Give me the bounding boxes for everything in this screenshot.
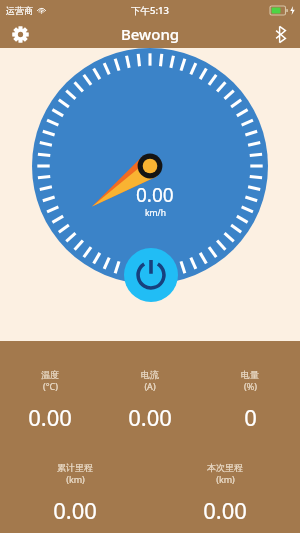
button[interactable]: Power — [124, 248, 178, 302]
staticText: 累计里程 — [57, 462, 93, 473]
staticText: 电量 — [241, 369, 259, 380]
staticText: 0.00 — [53, 495, 97, 525]
staticText: 运营商 — [6, 5, 33, 16]
staticText: Bewong — [121, 24, 180, 44]
button[interactable]: Bluetooth — [260, 20, 300, 48]
staticText: 下午5:13 — [131, 4, 169, 17]
staticText: 电流 — [141, 369, 159, 380]
staticText: (%) — [244, 380, 257, 392]
staticText: (A) — [144, 380, 156, 392]
button[interactable]: 电量 — [200, 367, 300, 434]
button[interactable]: Settings — [0, 20, 40, 48]
staticText: 温度 — [41, 369, 59, 380]
staticText: 0.00 — [128, 402, 172, 432]
staticText: 0.00 — [28, 402, 72, 432]
staticText: 本次里程 — [207, 462, 243, 473]
staticText: (°C) — [43, 380, 58, 392]
staticText: 0.00 — [203, 495, 247, 525]
button[interactable]: 累计里程 — [0, 460, 150, 527]
button[interactable]: 温度 — [0, 367, 100, 434]
staticText: (km) — [66, 473, 85, 485]
staticText: km/h — [145, 207, 166, 219]
staticText: 0.00 — [136, 182, 174, 208]
button[interactable]: 电流 — [100, 367, 200, 434]
staticText: (km) — [216, 473, 235, 485]
button[interactable]: 本次里程 — [150, 460, 300, 527]
staticText: 0 — [244, 402, 257, 432]
